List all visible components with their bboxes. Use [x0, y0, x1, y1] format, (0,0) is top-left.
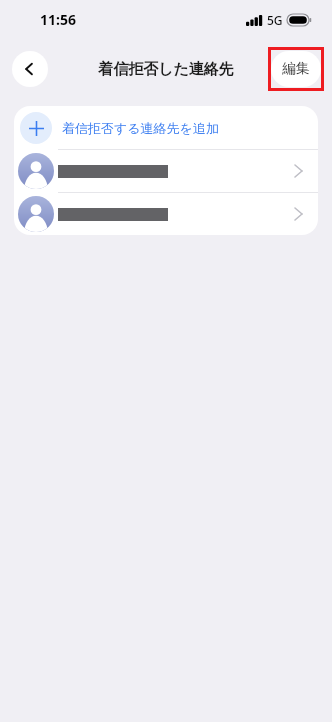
button[interactable]: [14, 150, 318, 192]
staticText: 着信拒否した連絡先: [98, 60, 234, 79]
staticText: 5G: [267, 12, 283, 28]
button[interactable]: [14, 193, 318, 235]
button[interactable]: 戻る: [12, 51, 48, 87]
staticText: 編集: [282, 60, 310, 78]
staticText: 着信拒否する連絡先を追加: [62, 120, 219, 136]
button[interactable]: 編集: [271, 51, 321, 87]
staticText: 11:56: [40, 10, 76, 29]
button[interactable]: 着信拒否する連絡先を追加: [14, 106, 318, 149]
